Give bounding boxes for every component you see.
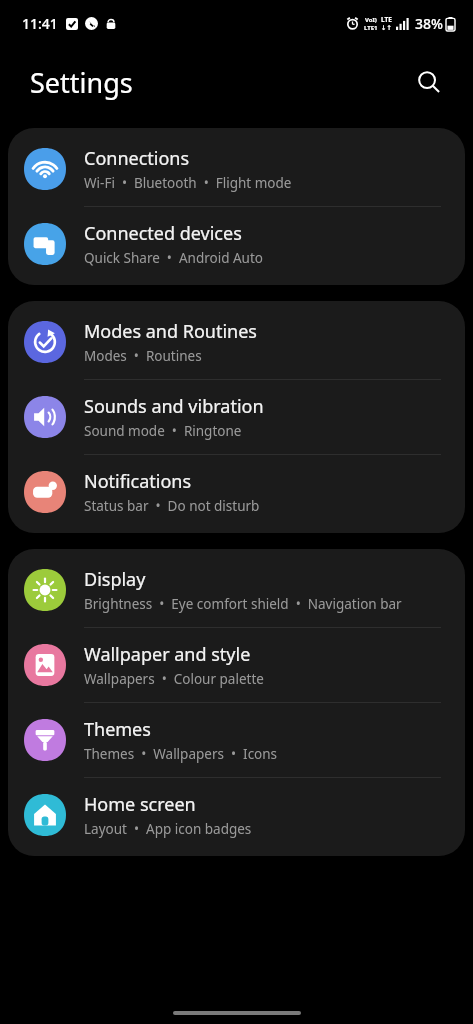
button[interactable]: Modes and Routines xyxy=(8,305,465,379)
staticText: Connected devices xyxy=(84,221,242,246)
button[interactable]: Connections xyxy=(8,132,465,206)
staticText: LTE xyxy=(381,15,392,24)
staticText: Connections xyxy=(84,146,190,171)
staticText: Home screen xyxy=(84,792,196,817)
staticText: VoI) xyxy=(365,16,377,24)
button[interactable]: Sounds and vibration xyxy=(8,380,465,454)
staticText: Sounds and vibration xyxy=(84,394,264,419)
staticText: Brightness • Eye comfort shield • Naviga… xyxy=(84,595,402,613)
button[interactable]: Connected devices xyxy=(8,207,465,281)
staticText: Status bar • Do not disturb xyxy=(84,497,260,515)
staticText: Quick Share • Android Auto xyxy=(84,249,263,267)
button[interactable]: Wallpaper and style xyxy=(8,628,465,702)
staticText: 38% xyxy=(415,14,443,33)
staticText: LTE1 xyxy=(364,24,378,32)
button[interactable]: Themes xyxy=(8,703,465,777)
staticText: Sound mode • Ringtone xyxy=(84,422,242,440)
staticText: 11:41 xyxy=(22,14,58,33)
staticText: Themes xyxy=(84,717,151,742)
staticText: Wallpaper and style xyxy=(84,642,251,667)
staticText: Notifications xyxy=(84,469,192,494)
staticText: Modes • Routines xyxy=(84,347,202,365)
staticText: Layout • App icon badges xyxy=(84,820,252,838)
staticText: Modes and Routines xyxy=(84,319,257,344)
button[interactable]: Home screen xyxy=(8,778,465,852)
button[interactable]: Notifications xyxy=(8,455,465,529)
staticText: Wallpapers • Colour palette xyxy=(84,670,264,688)
staticText: Themes • Wallpapers • Icons xyxy=(84,745,278,763)
button[interactable]: Display xyxy=(8,553,465,627)
staticText: Settings xyxy=(30,64,133,101)
staticText: Display xyxy=(84,567,146,592)
staticText: ↓↑ xyxy=(381,24,392,32)
staticText: Wi-Fi • Bluetooth • Flight mode xyxy=(84,174,292,192)
button[interactable]: Search settings xyxy=(407,60,451,104)
